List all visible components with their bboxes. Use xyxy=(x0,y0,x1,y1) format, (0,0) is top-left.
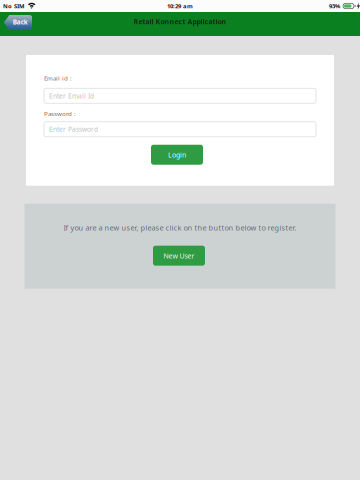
button[interactable]: New User xyxy=(153,246,205,266)
staticText: 93% xyxy=(329,2,340,10)
staticText: Password : xyxy=(44,109,76,118)
staticText: Login xyxy=(168,150,186,159)
staticText: Email id : xyxy=(44,74,72,82)
staticText: Enter Email Id xyxy=(49,91,94,100)
staticText: Enter Password xyxy=(49,125,98,134)
staticText: 10:29 am xyxy=(167,2,193,10)
button[interactable]: Login xyxy=(151,145,203,165)
staticText: Back xyxy=(13,18,28,26)
staticText: Retail Konnect Application xyxy=(133,17,226,26)
staticText: No SIM xyxy=(3,2,25,10)
button[interactable]: Back xyxy=(4,15,32,30)
staticText: New User xyxy=(163,251,194,260)
staticText: If you are a new user, please click on t… xyxy=(63,223,296,233)
